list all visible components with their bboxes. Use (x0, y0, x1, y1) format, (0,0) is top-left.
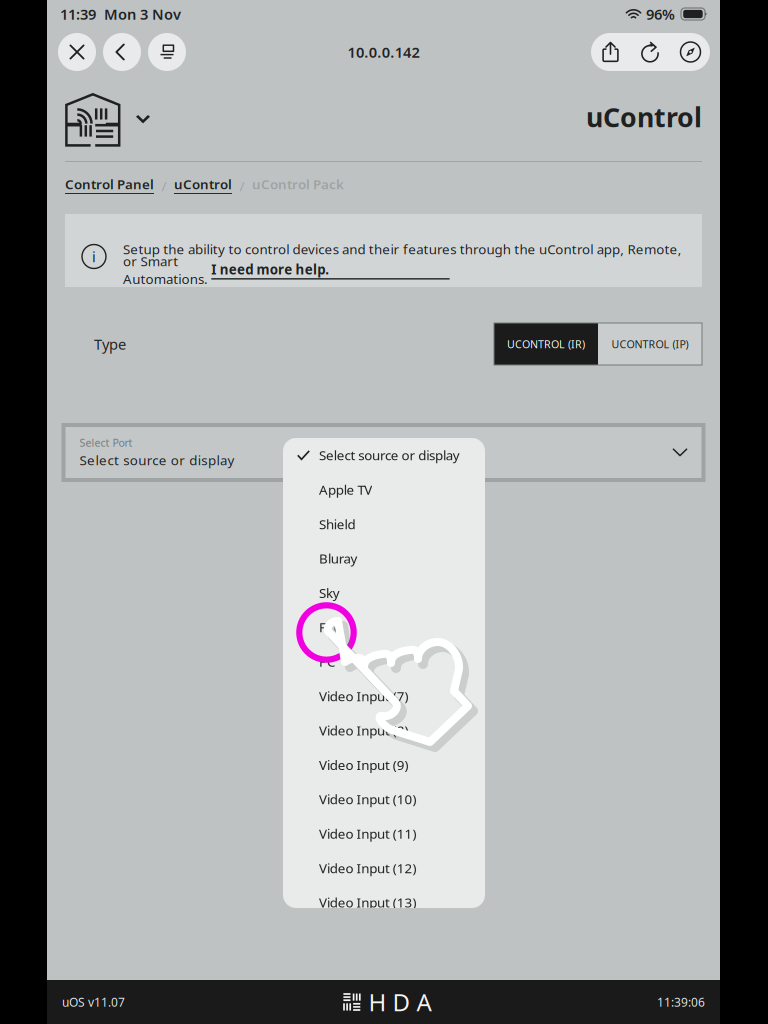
button[interactable]: Video Input (9) (283, 748, 485, 782)
button[interactable]: uControl (174, 177, 232, 195)
staticText: H D A (368, 986, 431, 1018)
button[interactable]: Fire (283, 610, 485, 644)
button[interactable]: Reader view (148, 33, 186, 71)
staticText: 11:39:06 (657, 994, 705, 1010)
staticText: Video Input (11) (319, 825, 416, 842)
staticText: I need more help. (211, 260, 329, 278)
staticText: Sky (319, 584, 340, 602)
staticText: Select source or display (79, 451, 234, 469)
staticText: Fire (319, 618, 342, 636)
button[interactable]: Video Input (11) (283, 816, 485, 851)
staticText: Video Input (10) (319, 790, 416, 808)
button[interactable]: Shield (283, 507, 485, 541)
staticText: Mon 3 Nov (104, 4, 181, 24)
staticText: Control Panel (65, 175, 154, 193)
button[interactable]: Video Input (8) (283, 713, 485, 748)
staticText: Setup the ability to control devices and… (123, 240, 682, 258)
staticText: / (161, 177, 166, 195)
button[interactable]: Video Input (12) (283, 851, 485, 885)
staticText: PC (319, 653, 335, 670)
staticText: 96% (646, 4, 675, 24)
staticText: Select source or display (319, 446, 460, 464)
staticText: UCONTROL (IP) (611, 337, 688, 351)
staticText: Shield (319, 515, 355, 533)
button[interactable]: Control Panel (65, 177, 154, 195)
staticText: Video Input (12) (319, 859, 416, 877)
button[interactable]: Select Port (61, 423, 705, 482)
staticText: Video Input (8) (319, 721, 409, 739)
staticText: Select Port (79, 435, 132, 450)
button[interactable]: Bluray (283, 541, 485, 576)
staticText: Video Input (13) (319, 893, 416, 911)
staticText: Apple TV (319, 481, 372, 498)
staticText: / (239, 177, 244, 195)
button[interactable]: Video Input (7) (283, 679, 485, 713)
staticText: uControl (586, 99, 702, 135)
staticText: 11:39 (60, 4, 96, 24)
button[interactable]: Site menu (127, 93, 159, 147)
staticText: uOS v11.07 (62, 994, 125, 1010)
button[interactable]: Sky (283, 576, 485, 610)
staticText: Video Input (9) (319, 756, 409, 774)
staticText: Bluray (319, 549, 357, 567)
button[interactable]: Apple TV (283, 472, 485, 507)
staticText: uControl (174, 175, 232, 193)
button[interactable]: Video Input (13) (283, 885, 485, 920)
button[interactable]: Close (58, 33, 96, 71)
staticText: or Smart Automations. (123, 252, 211, 288)
button[interactable]: PC (283, 644, 485, 679)
staticText: uControl Pack (252, 175, 344, 193)
button[interactable]: Back (103, 33, 141, 71)
button[interactable]: Browser actions (591, 33, 710, 71)
button[interactable]: I need more help. (211, 260, 450, 279)
staticText: UCONTROL (IR) (507, 337, 585, 351)
button[interactable]: Video Input (10) (283, 782, 485, 816)
staticText: i (92, 247, 96, 266)
button[interactable]: Select source or display (283, 438, 485, 472)
staticText: 10.0.0.142 (347, 42, 420, 62)
button[interactable]: UCONTROL (IP) (598, 323, 702, 365)
staticText: Video Input (7) (319, 687, 409, 705)
button[interactable]: UCONTROL (IR) (494, 323, 598, 365)
staticText: Type (94, 334, 126, 354)
